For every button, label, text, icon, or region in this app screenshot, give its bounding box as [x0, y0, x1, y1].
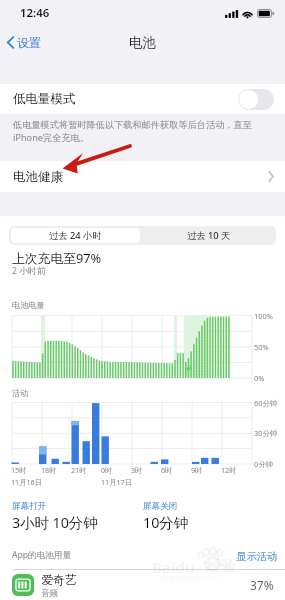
- staticText: 11月16日: [11, 477, 42, 487]
- button[interactable]: 过去 10 天: [142, 226, 276, 245]
- button[interactable]: 显示活动: [234, 548, 280, 565]
- staticText: 过去 24 小时: [49, 229, 102, 242]
- button[interactable]: 爱奇艺: [0, 570, 285, 600]
- staticText: 11月17日: [101, 477, 132, 487]
- staticText: 60分钟: [254, 398, 278, 408]
- staticText: 3时: [131, 465, 143, 475]
- staticText: 18时: [41, 465, 57, 475]
- staticText: 37%: [250, 577, 274, 593]
- button[interactable]: 屏幕打开: [12, 501, 98, 533]
- staticText: 低电量模式将暂时降低以下载和邮件获取等后台活动，直至iPhone完全充电。: [13, 119, 257, 144]
- staticText: 低电量模式: [13, 91, 76, 107]
- button[interactable]: 设置: [0, 30, 49, 55]
- staticText: 屏幕关闭: [143, 501, 178, 512]
- staticText: 15时: [11, 465, 27, 475]
- staticText: 2 小时前: [12, 265, 46, 277]
- staticText: App的电池用量: [12, 549, 72, 561]
- staticText: 显示活动: [236, 550, 278, 563]
- staticText: 21时: [71, 465, 87, 475]
- staticText: 设置: [17, 35, 41, 50]
- staticText: 12:46: [20, 5, 50, 21]
- staticText: 6时: [161, 465, 173, 475]
- button[interactable]: 过去 24 小时: [11, 228, 140, 243]
- staticText: 音频: [41, 588, 59, 599]
- staticText: 屏幕打开: [12, 501, 47, 512]
- button[interactable]: 低电量模式开关: [238, 89, 274, 110]
- staticText: 50%: [254, 342, 269, 352]
- staticText: 电池电量: [12, 300, 45, 310]
- staticText: 30分钟: [254, 428, 278, 438]
- button[interactable]: 电池健康: [0, 161, 285, 192]
- staticText: 10分钟: [143, 513, 188, 533]
- staticText: 过去 10 天: [187, 229, 231, 242]
- staticText: 3小时 10分钟: [12, 513, 98, 533]
- staticText: 爱奇艺: [41, 572, 77, 587]
- button[interactable]: 屏幕关闭: [143, 501, 188, 533]
- staticText: 100%: [254, 311, 273, 321]
- staticText: 0分钟: [254, 459, 274, 469]
- staticText: 上次充电至97%: [12, 249, 102, 266]
- staticText: Baidu: [152, 557, 195, 577]
- staticText: 12时: [221, 465, 237, 475]
- staticText: 经验: [206, 557, 236, 576]
- staticText: 活动: [12, 388, 29, 398]
- staticText: 0时: [101, 465, 113, 475]
- staticText: 9时: [191, 465, 203, 475]
- staticText: 电池健康: [13, 169, 63, 185]
- staticText: 电池: [129, 34, 156, 51]
- staticText: 0%: [254, 373, 265, 383]
- staticText: jingyan.baidu.com: [161, 573, 218, 582]
